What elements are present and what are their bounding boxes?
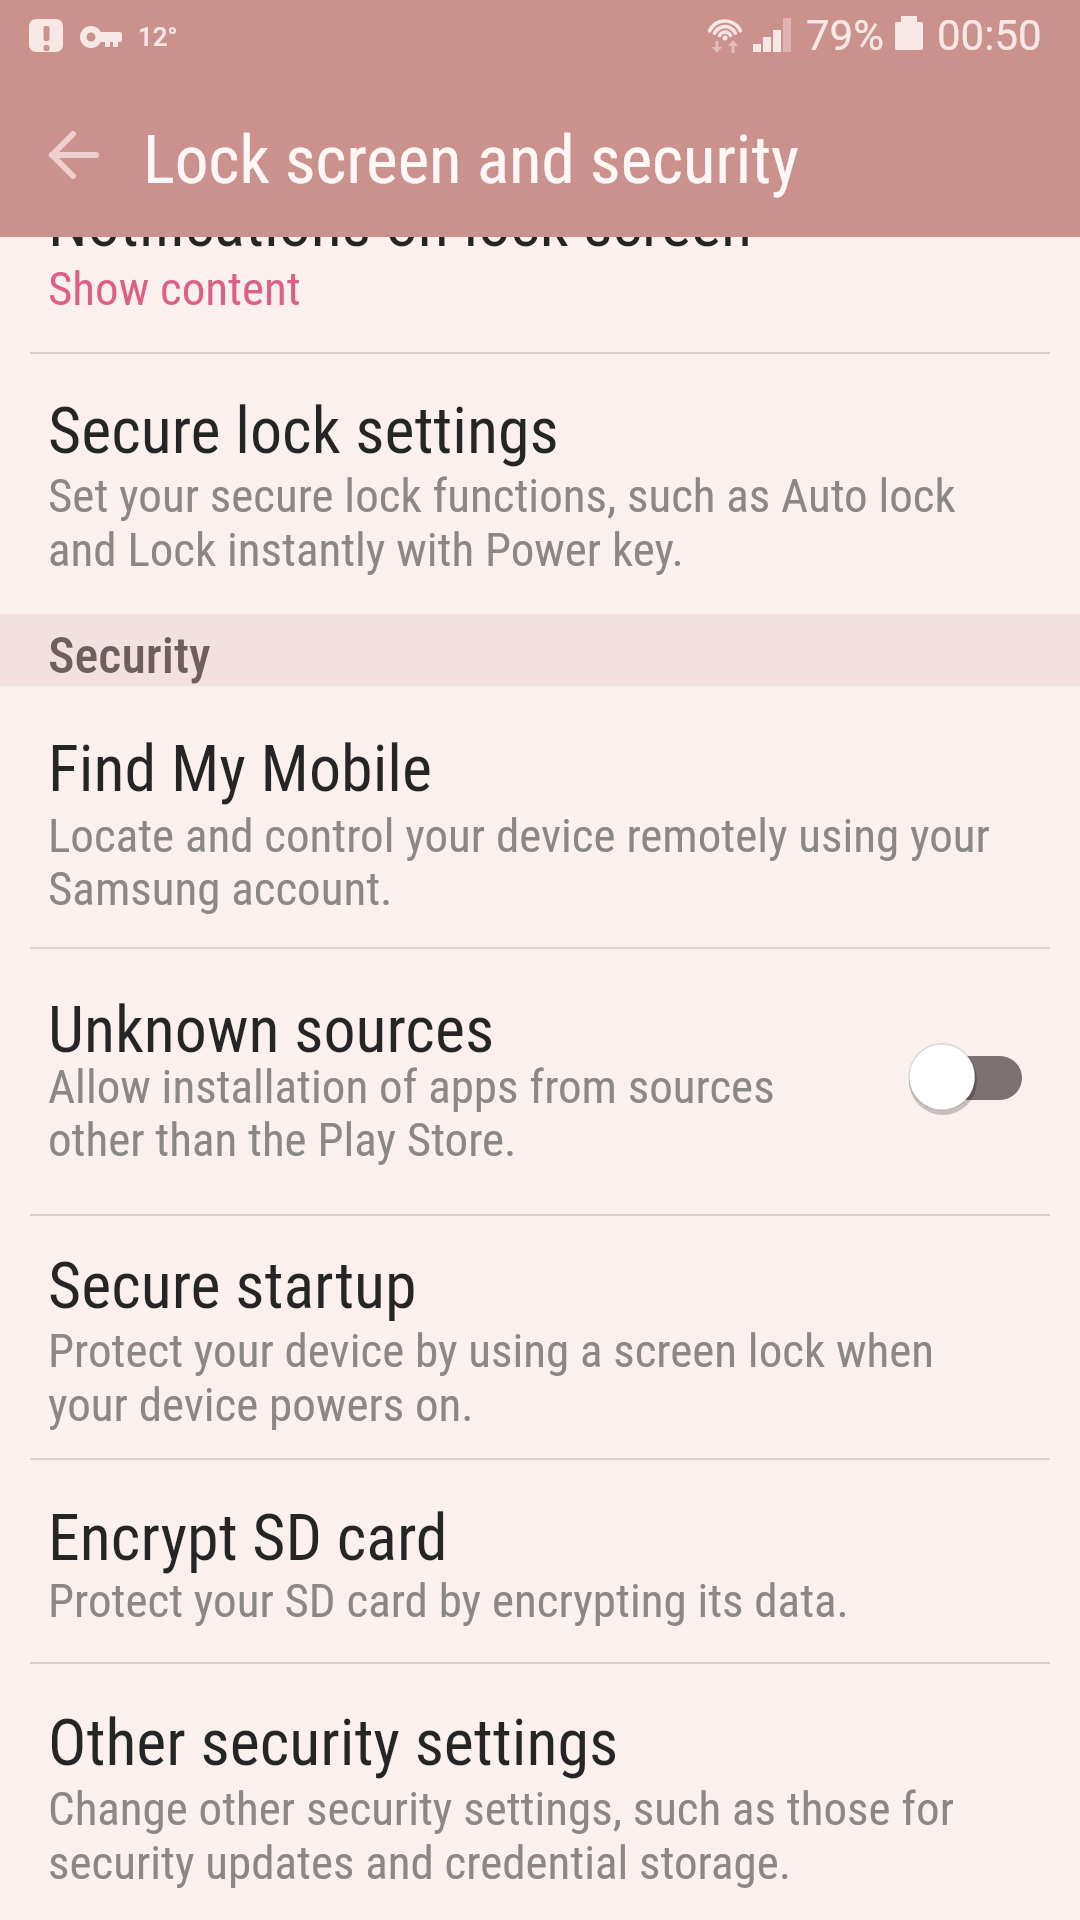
button[interactable] [0,688,1080,947]
staticText: Change other security settings, such as … [48,1781,955,1836]
staticText: 12° [138,22,178,52]
button[interactable] [0,237,1080,352]
staticText: Show content [48,261,301,316]
staticText: Protect your device by using a screen lo… [48,1323,934,1378]
staticText: Samsung account. [48,861,393,916]
button[interactable] [0,949,1080,1214]
staticText: Lock screen and security [143,121,799,200]
staticText: Set your secure lock functions, such as … [48,468,956,523]
button[interactable] [890,1030,1040,1125]
staticText: Other security settings [48,1706,619,1781]
staticText: security updates and credential storage. [48,1835,792,1890]
staticText: 00:50 [937,11,1042,60]
staticText: Protect your SD card by encrypting its d… [48,1573,849,1628]
staticText: and Lock instantly with Power key. [48,522,684,577]
staticText: Allow installation of apps from sources [48,1059,775,1114]
staticText: your device powers on. [48,1377,474,1432]
staticText: Notifications on lock screen [48,187,752,262]
button[interactable] [0,1216,1080,1458]
staticText: Security [48,627,211,686]
staticText: Find My Mobile [48,732,432,807]
staticText: Unknown sources [48,993,495,1068]
button[interactable] [0,1460,1080,1662]
button[interactable] [0,354,1080,614]
staticText: Secure startup [48,1249,417,1324]
staticText: 79% [806,11,884,60]
staticText: Secure lock settings [48,394,559,469]
staticText: Locate and control your device remotely … [48,808,990,863]
button[interactable] [30,125,120,195]
staticText: other than the Play Store. [48,1112,517,1167]
button[interactable] [0,1664,1080,1920]
staticText: Encrypt SD card [48,1501,448,1576]
